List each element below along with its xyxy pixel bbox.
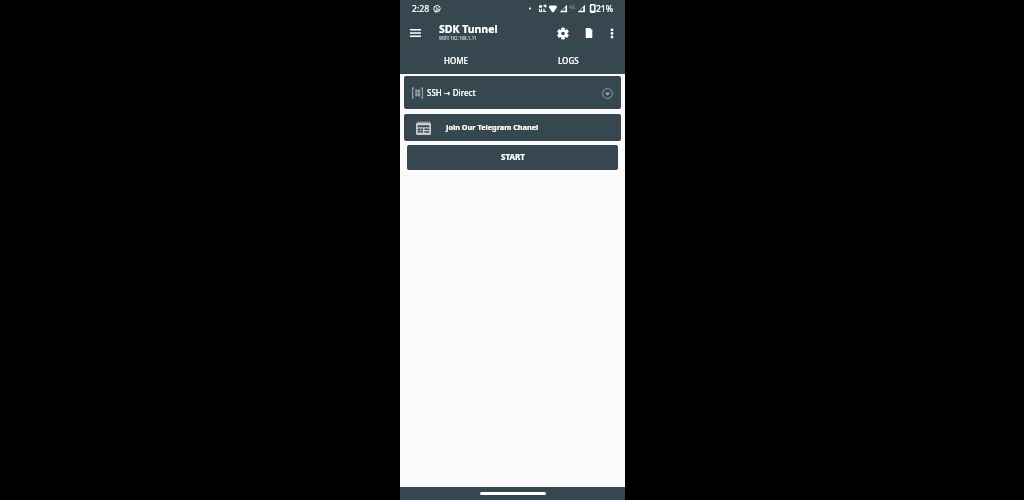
button[interactable]: START — [407, 145, 618, 170]
button[interactable]: Settings — [553, 23, 573, 43]
staticText: START — [501, 151, 525, 162]
button[interactable]: LOGS — [512, 48, 625, 74]
staticText: LOGS — [558, 55, 579, 66]
staticText: SDK Tunnel — [439, 22, 498, 36]
button[interactable]: More options — [602, 23, 622, 43]
staticText: HOME — [444, 55, 469, 66]
button[interactable]: Join Our Telegram Chanel — [404, 114, 621, 141]
staticText: Join Our Telegram Chanel — [446, 122, 539, 132]
staticText: 21% — [596, 3, 613, 15]
staticText: 2:28 — [412, 3, 430, 15]
button[interactable]: Log file — [579, 23, 599, 43]
staticText: WIFI 192.168.1.11 — [439, 35, 477, 41]
button[interactable]: SSH → Direct — [404, 76, 621, 109]
button[interactable]: Menu — [405, 23, 425, 43]
staticText: 4G — [569, 4, 576, 11]
button[interactable]: HOME — [400, 48, 512, 74]
staticText: SSH → Direct — [427, 87, 476, 98]
